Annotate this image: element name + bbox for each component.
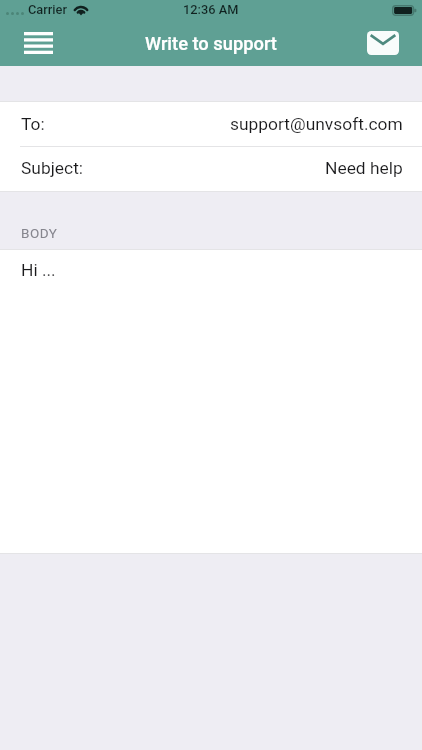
staticText: Hi ... — [21, 260, 56, 280]
staticText: Subject: — [21, 158, 84, 178]
staticText: To: — [21, 114, 45, 134]
staticText: Write to support — [145, 33, 277, 54]
button[interactable]: To: — [0, 102, 422, 147]
staticText: 12:36 AM — [183, 2, 239, 17]
button[interactable]: Subject: — [0, 147, 422, 191]
button[interactable]: Send mail — [366, 22, 422, 66]
staticText: Need help — [325, 158, 403, 178]
button[interactable]: Hi ... — [0, 250, 422, 553]
staticText: Carrier — [28, 2, 67, 17]
staticText: BODY — [21, 225, 58, 241]
button[interactable]: Menu — [8, 22, 70, 66]
staticText: support@unvsoft.com — [230, 114, 403, 134]
